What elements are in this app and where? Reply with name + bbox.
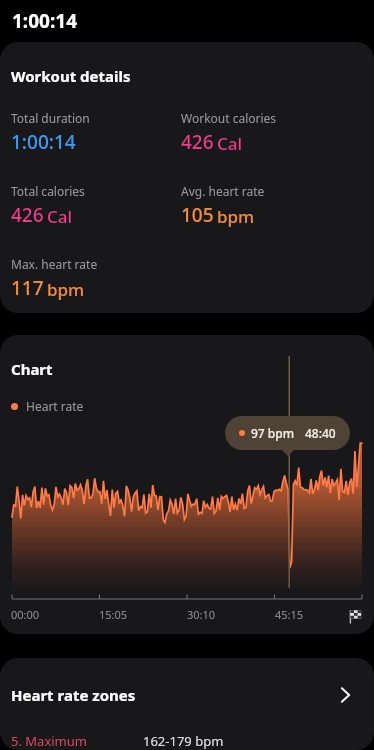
staticText: Cal [217, 132, 243, 155]
staticText: 00:00 [11, 607, 40, 622]
staticText: bpm [47, 278, 85, 301]
button[interactable]: 97 bpm [225, 416, 350, 450]
staticText: Total duration [11, 110, 90, 126]
staticText: Max. heart rate [11, 256, 98, 272]
staticText: Cal [47, 205, 73, 228]
staticText: Total calories [11, 183, 85, 199]
staticText: 45:15 [275, 607, 304, 622]
staticText: 15:05 [99, 607, 128, 622]
staticText: Heart rate zones [11, 685, 136, 705]
staticText: Chart [11, 359, 53, 379]
staticText: 1:00:14 [11, 129, 76, 155]
staticText: 426 [181, 129, 214, 155]
other: Open heart rate zones [332, 682, 358, 708]
staticText: 105 [181, 202, 214, 228]
button[interactable]: Heart rate zones [0, 658, 374, 750]
staticText: 48:40 [305, 425, 336, 441]
button[interactable]: Heart rate [11, 398, 84, 414]
staticText: 97 bpm [251, 425, 295, 441]
staticText: 426 [11, 202, 44, 228]
staticText: 30:10 [187, 607, 216, 622]
staticText: 5. Maximum [11, 732, 87, 750]
staticText: 1:00:14 [12, 8, 78, 34]
other: Finish [348, 609, 363, 624]
staticText: Heart rate [26, 398, 84, 414]
staticText: Workout calories [181, 110, 277, 126]
staticText: Workout details [11, 66, 131, 86]
staticText: 117 [11, 275, 44, 301]
staticText: bpm [217, 205, 255, 228]
staticText: Avg. heart rate [181, 183, 265, 199]
staticText: 162-179 bpm [143, 732, 224, 750]
